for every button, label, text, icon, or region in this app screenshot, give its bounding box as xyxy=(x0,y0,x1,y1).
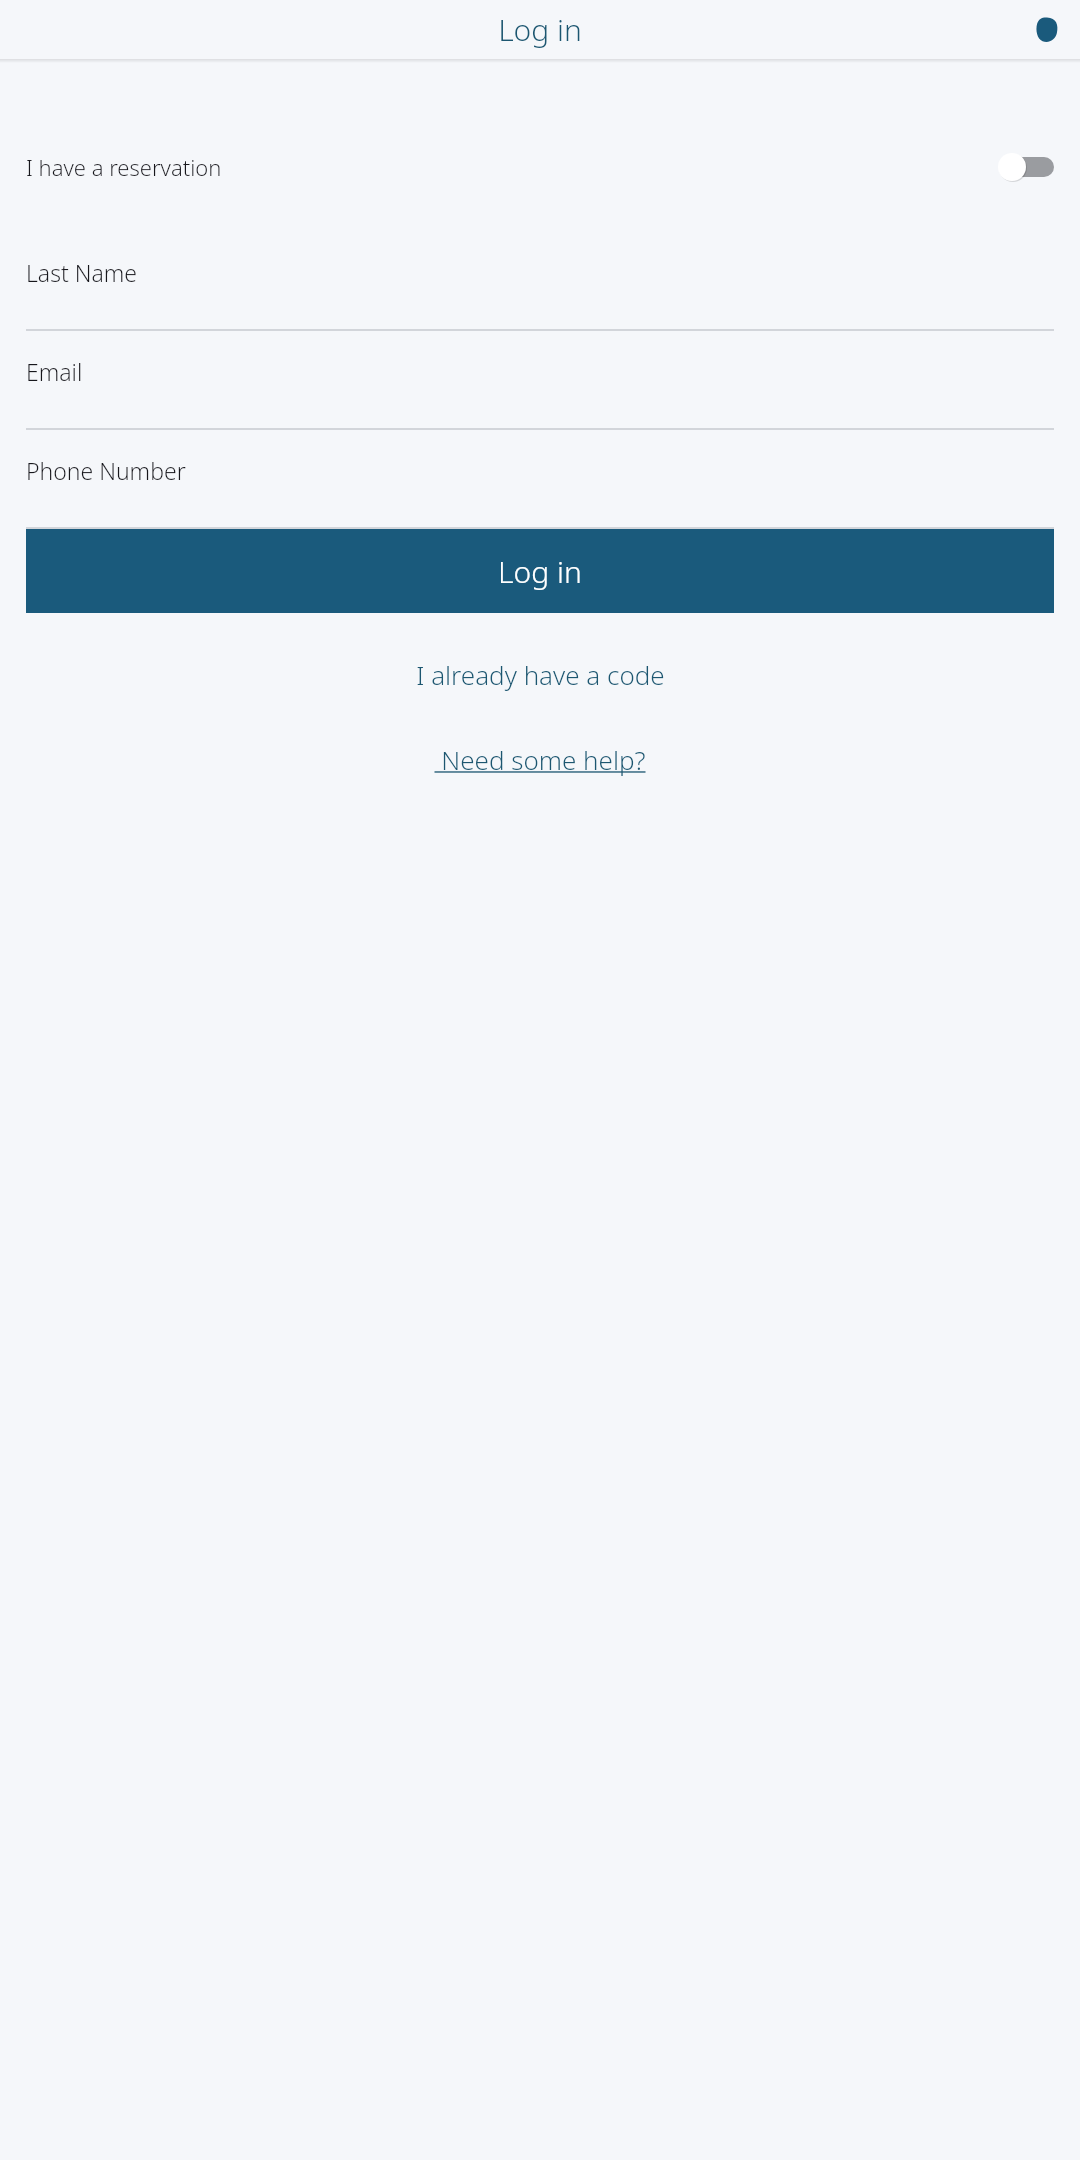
staticText: Log in xyxy=(498,551,582,592)
button[interactable]: Need some help? xyxy=(26,735,1054,783)
button[interactable]: Account xyxy=(1034,17,1060,43)
button[interactable]: Email xyxy=(26,331,1054,430)
button[interactable]: Phone Number xyxy=(26,430,1054,529)
staticText: Log in xyxy=(498,9,582,50)
staticText: Phone Number xyxy=(26,455,186,486)
staticText: I already have a code xyxy=(416,657,665,692)
button[interactable]: Last Name xyxy=(26,232,1054,331)
staticText: Email xyxy=(26,356,83,387)
button[interactable]: Log in xyxy=(26,529,1054,613)
staticText: Last Name xyxy=(26,257,138,288)
staticText: I have a reservation xyxy=(26,152,222,182)
button[interactable]: I already have a code xyxy=(26,650,1054,698)
staticText: Need some help? xyxy=(434,742,646,777)
button[interactable]: I have a reservation xyxy=(26,139,1054,195)
